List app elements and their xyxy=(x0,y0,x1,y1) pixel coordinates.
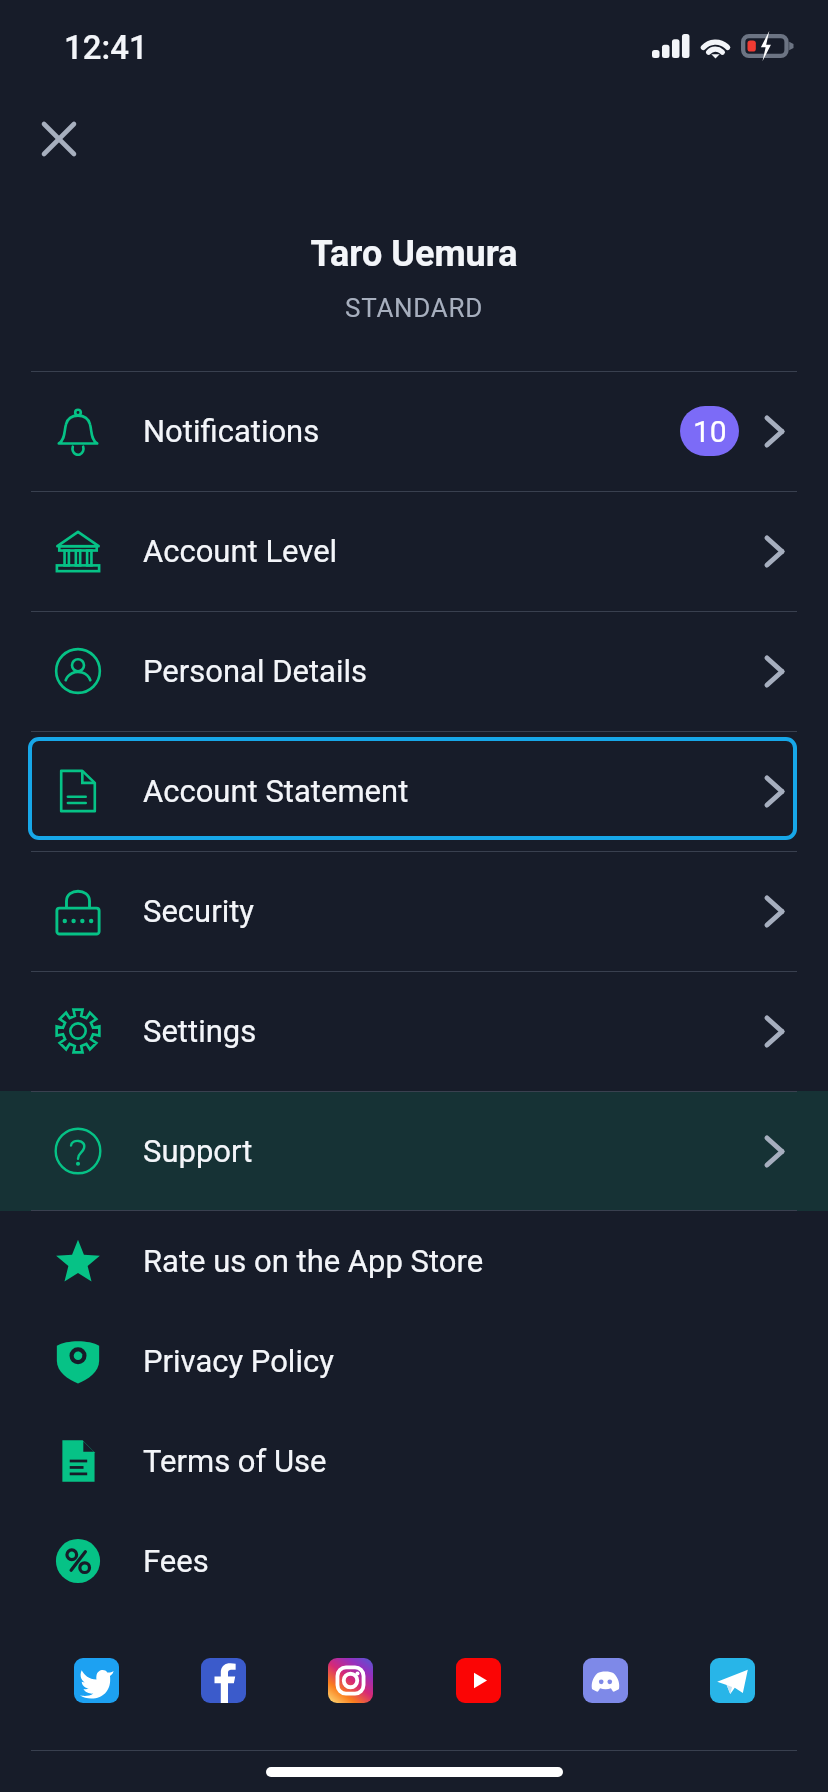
button[interactable]: Personal Details xyxy=(0,611,828,731)
staticText: Support xyxy=(143,1133,253,1169)
button[interactable]: Instagram xyxy=(328,1658,373,1703)
button[interactable]: Telegram xyxy=(710,1658,755,1703)
button[interactable]: Account Level xyxy=(0,491,828,611)
button[interactable]: Notifications xyxy=(0,371,828,491)
button[interactable]: Rate us on the App Store xyxy=(0,1211,828,1311)
button[interactable]: Discord xyxy=(583,1658,628,1703)
button[interactable]: Support xyxy=(0,1091,828,1211)
staticText: Account Statement xyxy=(143,773,409,809)
button[interactable]: Close xyxy=(26,106,92,172)
staticText: STANDARD xyxy=(345,293,483,323)
staticText: Taro Uemura xyxy=(310,233,518,275)
button[interactable]: Fees xyxy=(0,1511,828,1611)
staticText: Notifications xyxy=(143,413,320,449)
button[interactable]: Twitter xyxy=(74,1658,119,1703)
button[interactable]: Facebook xyxy=(201,1658,246,1703)
staticText: 10 xyxy=(693,414,727,449)
button[interactable]: Account Statement xyxy=(0,731,828,851)
staticText: Terms of Use xyxy=(143,1443,327,1479)
button[interactable]: Settings xyxy=(0,971,828,1091)
staticText: Account Level xyxy=(143,533,338,569)
staticText: Rate us on the App Store xyxy=(143,1243,484,1279)
staticText: 12:41 xyxy=(64,28,148,67)
staticText: Privacy Policy xyxy=(143,1343,334,1379)
staticText: Settings xyxy=(143,1013,257,1049)
button[interactable]: Terms of Use xyxy=(0,1411,828,1511)
staticText: Security xyxy=(143,893,255,929)
staticText: Personal Details xyxy=(143,653,368,689)
button[interactable]: Security xyxy=(0,851,828,971)
button[interactable]: Privacy Policy xyxy=(0,1311,828,1411)
button[interactable]: YouTube xyxy=(456,1658,501,1703)
staticText: Fees xyxy=(143,1543,209,1579)
